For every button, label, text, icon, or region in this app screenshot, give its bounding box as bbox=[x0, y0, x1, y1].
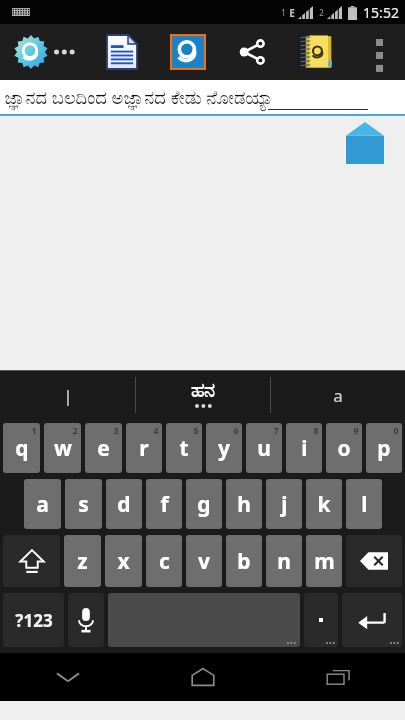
staticText: 0 bbox=[393, 424, 399, 436]
button[interactable]: q bbox=[3, 423, 40, 473]
button[interactable]: k bbox=[306, 479, 342, 529]
button[interactable]: Enter bbox=[342, 593, 402, 647]
staticText: v bbox=[198, 547, 210, 576]
button[interactable]: ಹನ bbox=[136, 371, 270, 419]
button[interactable]: ?123 bbox=[3, 593, 64, 647]
staticText: x bbox=[117, 547, 130, 576]
button[interactable]: App bbox=[10, 31, 76, 73]
staticText: j bbox=[281, 490, 288, 519]
staticText: ಜ್ಞಾನದ ಬಲದಿಂದ ಅಜ್ಞಾನದ ಕೇಡು ನೋಡಯ್ಯಾ bbox=[4, 85, 274, 110]
button[interactable]: t bbox=[166, 423, 202, 473]
button[interactable]: Document bbox=[100, 30, 144, 74]
button[interactable]: r bbox=[126, 423, 162, 473]
staticText: 3 bbox=[113, 424, 119, 436]
staticText: y bbox=[218, 434, 230, 463]
button[interactable] bbox=[304, 593, 338, 647]
staticText: 1 bbox=[31, 424, 37, 436]
button[interactable]: v bbox=[186, 535, 222, 587]
button[interactable]: m bbox=[306, 535, 342, 587]
staticText: 5 bbox=[193, 424, 199, 436]
button[interactable]: n bbox=[266, 535, 302, 587]
button[interactable]: l bbox=[346, 479, 382, 529]
button[interactable]: e bbox=[85, 423, 122, 473]
staticText: k bbox=[317, 490, 331, 519]
button[interactable]: g bbox=[186, 479, 222, 529]
staticText: h bbox=[237, 490, 251, 519]
button[interactable]: p bbox=[366, 423, 402, 473]
staticText: f bbox=[160, 490, 169, 519]
staticText: a bbox=[333, 384, 343, 407]
staticText: q bbox=[15, 434, 29, 463]
staticText: m bbox=[314, 547, 335, 576]
staticText: n bbox=[277, 547, 291, 576]
staticText: 6 bbox=[233, 424, 239, 436]
staticText: p bbox=[377, 434, 391, 463]
button[interactable]: c bbox=[146, 535, 182, 587]
button[interactable]: a bbox=[271, 371, 405, 419]
staticText: c bbox=[159, 547, 170, 576]
button[interactable]: Shift bbox=[3, 535, 60, 587]
staticText: 2 bbox=[72, 424, 78, 436]
button[interactable]: More options bbox=[357, 30, 401, 74]
button[interactable]: Hide keyboard bbox=[33, 653, 103, 701]
button[interactable]: Keyboard layout bbox=[166, 30, 210, 74]
staticText: ?123 bbox=[15, 609, 53, 632]
staticText: s bbox=[78, 490, 89, 519]
button[interactable]: y bbox=[206, 423, 242, 473]
staticText: 7 bbox=[273, 424, 279, 436]
staticText: u bbox=[257, 434, 271, 463]
staticText: z bbox=[77, 547, 88, 576]
button[interactable]: Backspace bbox=[346, 535, 402, 587]
staticText: 1 bbox=[281, 7, 286, 18]
staticText: b bbox=[237, 547, 251, 576]
button[interactable]: | bbox=[0, 371, 135, 419]
staticText: 15:52 bbox=[363, 3, 399, 22]
staticText: 8 bbox=[313, 424, 319, 436]
staticText: l bbox=[361, 490, 368, 519]
button[interactable]: u bbox=[246, 423, 282, 473]
button[interactable]: o bbox=[326, 423, 362, 473]
button[interactable]: Share bbox=[230, 30, 274, 74]
button[interactable]: h bbox=[226, 479, 262, 529]
staticText: | bbox=[63, 384, 73, 407]
button[interactable]: w bbox=[44, 423, 81, 473]
button[interactable]: j bbox=[266, 479, 302, 529]
button[interactable]: x bbox=[105, 535, 142, 587]
staticText: 2 bbox=[319, 7, 324, 18]
staticText: i bbox=[301, 434, 308, 463]
button[interactable]: z bbox=[64, 535, 101, 587]
button[interactable]: f bbox=[146, 479, 182, 529]
button[interactable]: Notebook bbox=[294, 30, 338, 74]
button[interactable]: d bbox=[106, 479, 142, 529]
staticText: t bbox=[179, 434, 189, 463]
staticText: w bbox=[54, 434, 72, 463]
staticText: E bbox=[289, 6, 295, 20]
staticText: r bbox=[139, 434, 149, 463]
button[interactable]: Recent apps bbox=[303, 653, 373, 701]
button[interactable]: s bbox=[65, 479, 102, 529]
button[interactable]: a bbox=[24, 479, 61, 529]
button[interactable]: b bbox=[226, 535, 262, 587]
staticText: d bbox=[117, 490, 131, 519]
staticText: 9 bbox=[353, 424, 359, 436]
button[interactable]: Voice input bbox=[68, 593, 104, 647]
staticText: e bbox=[97, 434, 110, 463]
staticText: a bbox=[36, 490, 49, 519]
staticText: ಹನ bbox=[191, 382, 215, 401]
staticText: o bbox=[337, 434, 351, 463]
button[interactable]: Home bbox=[168, 653, 238, 701]
button[interactable]: i bbox=[286, 423, 322, 473]
staticText: g bbox=[197, 490, 211, 519]
staticText: 4 bbox=[153, 424, 159, 436]
